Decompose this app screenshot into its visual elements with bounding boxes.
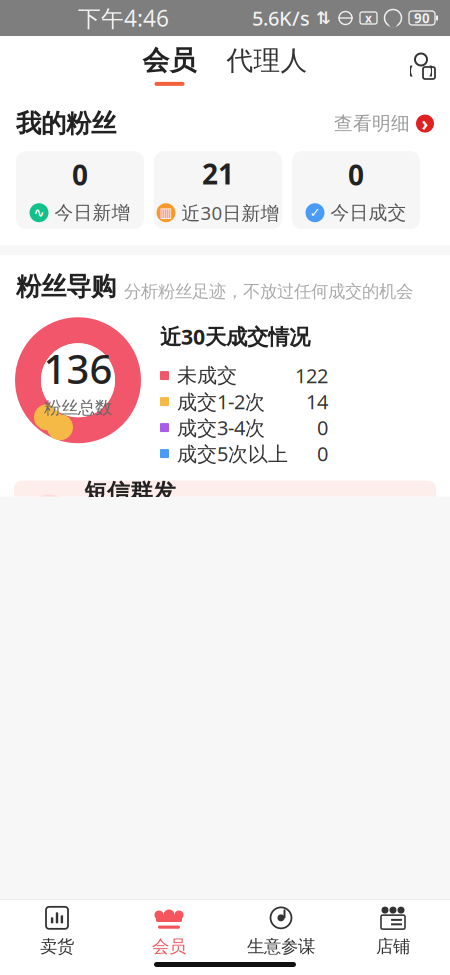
- staticText: x: [365, 10, 372, 26]
- staticText: 会员: [142, 44, 196, 77]
- staticText: 店铺: [376, 936, 410, 957]
- staticText: 代理人: [226, 44, 307, 77]
- staticText: ∿: [33, 205, 44, 220]
- staticText: 近30日新增: [181, 200, 279, 225]
- staticText: 成交5次以上: [177, 440, 288, 467]
- button[interactable]: 会员: [113, 902, 225, 960]
- staticText: 下午4:46: [78, 3, 169, 33]
- staticText: 会员: [152, 936, 186, 957]
- staticText: 0: [348, 156, 364, 193]
- staticText: 今日成交: [330, 201, 406, 224]
- button[interactable]: 代理人: [226, 44, 307, 86]
- staticText: 成交1-2次: [177, 388, 265, 415]
- staticText: 136: [43, 342, 112, 395]
- staticText: 卖货: [40, 936, 74, 957]
- staticText: 0: [72, 156, 88, 193]
- button[interactable]: 21: [154, 151, 282, 229]
- staticText: 我的粉丝: [16, 108, 116, 139]
- staticText: 未成交: [177, 363, 237, 388]
- button[interactable]: 短信群发: [14, 481, 436, 553]
- button[interactable]: 卖货: [1, 902, 113, 960]
- button[interactable]: 我的会员: [400, 44, 442, 86]
- button[interactable]: 0: [16, 151, 144, 229]
- staticText: 14: [306, 388, 328, 415]
- staticText: 0: [317, 440, 328, 467]
- staticText: ▥: [159, 205, 172, 220]
- staticText: 5.6K/s: [252, 5, 310, 31]
- staticText: 查看明细: [334, 112, 410, 135]
- staticText: ›: [421, 111, 428, 136]
- staticText: 粉丝总数: [44, 397, 112, 418]
- button[interactable]: 0: [292, 151, 420, 229]
- button[interactable]: 店铺: [337, 902, 449, 960]
- staticText: ✓: [309, 205, 320, 220]
- staticText: 21: [202, 155, 234, 192]
- staticText: 生意参谋: [247, 936, 315, 957]
- staticText: 今日新增: [54, 201, 130, 224]
- staticText: 90: [414, 9, 430, 27]
- button[interactable]: 会员: [142, 44, 196, 86]
- staticText: 0: [317, 414, 328, 441]
- staticText: 分析粉丝足迹，不放过任何成交的机会: [124, 281, 413, 302]
- staticText: ⇅: [316, 8, 331, 28]
- staticText: 122: [295, 362, 328, 389]
- staticText: 近30天成交情况: [160, 322, 310, 350]
- staticText: 粉丝导购: [16, 271, 116, 302]
- button[interactable]: 生意参谋: [225, 902, 337, 960]
- button[interactable]: 查看明细: [334, 112, 434, 135]
- staticText: 短信群发: [84, 478, 176, 506]
- staticText: 成交3-4次: [177, 414, 265, 441]
